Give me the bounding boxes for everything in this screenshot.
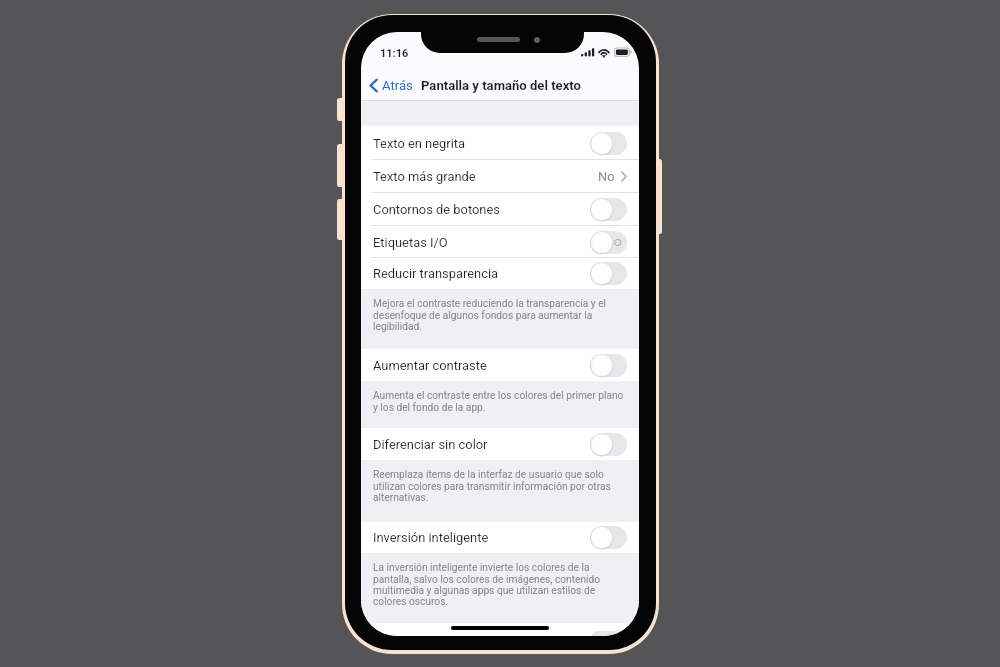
staticText: Aumentar contraste <box>373 358 487 373</box>
staticText: Inversión inteligente <box>373 530 489 545</box>
button[interactable]: Activar opción <box>590 132 627 155</box>
button[interactable]: Contornos de botones <box>361 193 639 226</box>
button[interactable]: Activar opción <box>590 198 627 221</box>
staticText: Diferenciar sin color <box>373 437 488 452</box>
staticText: Texto en negrita <box>373 136 466 151</box>
button[interactable]: Reducir transparencia <box>361 258 639 289</box>
button[interactable]: Texto más grande <box>361 160 639 193</box>
staticText: Contornos de botones <box>373 202 500 217</box>
staticText: Reemplaza ítems de la interfaz de usuari… <box>373 469 611 504</box>
staticText: La inversión inteligente invierte los co… <box>373 562 601 608</box>
button[interactable]: Activar opción <box>590 262 627 285</box>
button[interactable]: Activar opción <box>590 433 627 456</box>
button[interactable]: Activar opción <box>590 526 627 549</box>
button[interactable]: Activar opción <box>590 354 627 377</box>
staticText: Atrás <box>382 78 413 93</box>
staticText: No <box>598 169 615 184</box>
staticText: Aumenta el contraste entre los colores d… <box>373 390 624 414</box>
button[interactable]: Diferenciar sin color <box>361 428 639 460</box>
button[interactable]: Etiquetas I/O <box>361 226 639 258</box>
staticText: Mejora el contraste reduciendo la transp… <box>373 298 607 333</box>
staticText: Etiquetas I/O <box>373 235 448 250</box>
button[interactable]: Atrás <box>361 73 419 98</box>
button[interactable]: Inversión inteligente <box>361 522 639 553</box>
staticText: Pantalla y tamaño del texto <box>421 78 581 93</box>
button[interactable]: Texto en negrita <box>361 126 639 160</box>
staticText: Reducir transparencia <box>373 266 499 281</box>
button[interactable]: Activar opción <box>590 231 627 254</box>
staticText: 11:16 <box>380 47 409 60</box>
staticText: Texto más grande <box>373 169 476 184</box>
button[interactable]: Aumentar contraste <box>361 349 639 381</box>
